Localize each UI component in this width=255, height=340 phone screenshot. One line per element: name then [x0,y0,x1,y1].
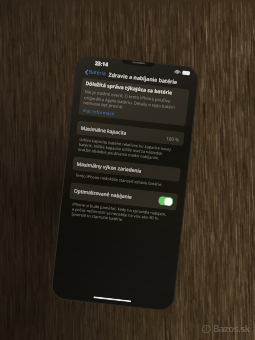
staticText: Maximálny výkon zariadenia [76,161,143,175]
staticText: Tento iPhone nedokáže stanoviť zdravie b… [75,173,163,187]
staticText: Zdravie a nabíjanie batérie [108,71,178,85]
staticText: Dôležitá správa týkajúca sa batérie [85,80,173,97]
button[interactable]: Maximálny výkon zariadenia [72,156,181,182]
staticText: ⓘ Bazos.sk [202,322,250,334]
staticText: iPhone si bude pamätať, kedy ho spravidl… [71,201,167,227]
staticText: Nie je možné overiť, či tento iPhone pou… [83,89,176,115]
button[interactable]: Optimalizované nabíjanie prepínač [158,196,174,206]
staticText: 100 % [166,135,180,143]
staticText: 23:14 [95,59,109,67]
button[interactable]: Batéria [84,68,106,77]
staticText: Maximálne kapacita [80,125,127,137]
staticText: Optimalizované nabíjanie [73,187,133,201]
button[interactable]: Optimalizované nabíjanie [69,182,178,211]
button[interactable]: Dôležitá správa týkajúca sa batérie [78,78,190,126]
staticText: Batéria [88,68,106,77]
staticText: Viac informácií [82,107,115,116]
staticText: Udáva kapacitu batérie relatívne ku kapa… [78,137,171,162]
button[interactable]: Maximálne kapacita [76,120,185,146]
